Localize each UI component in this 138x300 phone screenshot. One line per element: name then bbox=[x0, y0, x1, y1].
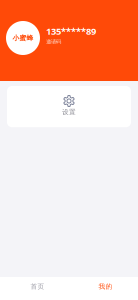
staticText: 135*****89 bbox=[46, 25, 96, 37]
button[interactable]: 我的 bbox=[69, 277, 138, 300]
staticText: 设置 bbox=[62, 108, 76, 116]
button[interactable]: 设置 bbox=[7, 86, 131, 127]
button[interactable]: 小蜜蜂 bbox=[0, 21, 138, 55]
staticText: 首页 bbox=[30, 282, 44, 291]
staticText: 邀请码 bbox=[46, 38, 61, 45]
staticText: 小蜜蜂 bbox=[12, 34, 33, 42]
button[interactable]: 首页 bbox=[0, 277, 69, 300]
staticText: 我的 bbox=[98, 282, 112, 291]
